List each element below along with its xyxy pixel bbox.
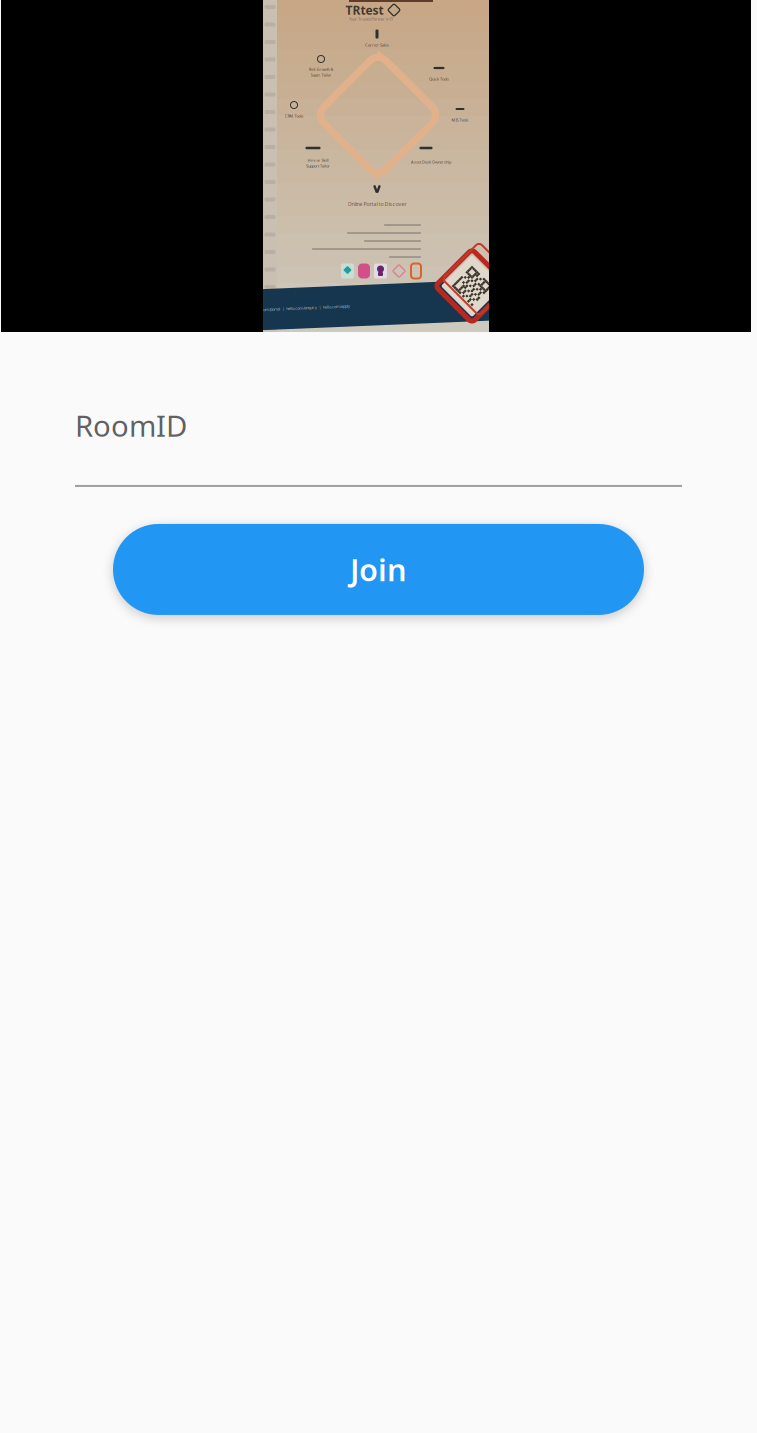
staticText: Carrier Sales (365, 42, 389, 48)
staticText: Quick Tools (429, 76, 449, 82)
staticText: Risk Growth & (308, 66, 333, 72)
staticText: Asset Desk Ownership (411, 159, 451, 165)
staticText: TRtest (345, 2, 383, 18)
staticText: hello.com/portal | hello.com/enquiry | h… (252, 302, 350, 308)
button[interactable]: Join (113, 524, 644, 615)
staticText: RoomID (75, 406, 187, 445)
staticText: MIS Tools (451, 117, 468, 123)
staticText: Hire or Skill (307, 157, 328, 163)
staticText: CRM Tools (284, 113, 303, 119)
staticText: Join (350, 549, 407, 590)
staticText: Support Tailor (306, 163, 330, 168)
staticText: Super Tailor (310, 72, 331, 77)
staticText: Your Trusted Partner in IT (349, 16, 393, 22)
staticText: Online Portal to Discover (347, 200, 406, 208)
